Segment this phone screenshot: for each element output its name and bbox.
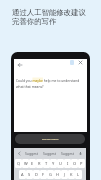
staticText: 通过人工智能修改建议 <box>12 8 86 17</box>
button[interactable]: Suggest <box>24 151 39 156</box>
button[interactable]: P <box>78 159 85 168</box>
button[interactable]: O <box>71 159 78 168</box>
button[interactable]: H <box>54 170 61 179</box>
staticText: Could you maybe help me to understand <box>16 78 80 82</box>
button[interactable]: T <box>43 159 50 168</box>
button[interactable]: Y <box>50 159 57 168</box>
button[interactable]: Voice input <box>78 151 83 156</box>
staticText: G <box>49 172 52 177</box>
staticText: P <box>80 161 83 166</box>
staticText: Q <box>17 161 21 166</box>
staticText: H <box>56 172 59 177</box>
button[interactable]: U <box>57 159 64 168</box>
staticText: Suggest <box>43 151 56 156</box>
staticText: T <box>45 161 48 166</box>
button[interactable]: G <box>47 170 54 179</box>
staticText: D <box>35 172 38 177</box>
button[interactable]: J <box>61 170 68 179</box>
button[interactable]: W <box>22 159 29 168</box>
button[interactable]: Suggest <box>60 151 75 156</box>
button[interactable]: Assistant <box>70 60 74 65</box>
staticText: U <box>59 161 62 166</box>
button[interactable]: Q <box>15 159 22 168</box>
staticText: Y <box>52 161 55 166</box>
staticText: Suggest <box>61 151 74 156</box>
button[interactable]: Improve writing <box>15 134 85 144</box>
button[interactable]: A <box>19 170 26 179</box>
button[interactable]: I <box>64 159 71 168</box>
button[interactable]: Close <box>77 59 83 65</box>
staticText: J <box>64 172 66 177</box>
button[interactable]: Back <box>16 61 23 68</box>
button[interactable]: D <box>33 170 40 179</box>
staticText: E <box>31 161 34 166</box>
button[interactable]: Previous suggestion <box>17 151 22 156</box>
button[interactable]: E <box>29 159 36 168</box>
staticText: I <box>67 161 69 166</box>
staticText: what that means? <box>16 84 44 88</box>
staticText: Suggest <box>25 151 38 156</box>
staticText: Improve writing <box>42 138 59 141</box>
button[interactable]: K <box>68 170 75 179</box>
staticText: S <box>28 172 31 177</box>
button[interactable]: S <box>26 170 33 179</box>
staticText: 完善你的写作 <box>12 17 57 26</box>
staticText: W <box>24 161 28 166</box>
staticText: A <box>21 172 24 177</box>
staticText: L <box>77 172 80 177</box>
button[interactable]: Suggest <box>42 151 57 156</box>
staticText: R <box>38 161 41 166</box>
button[interactable]: F <box>40 170 47 179</box>
staticText: F <box>42 172 45 177</box>
button[interactable]: R <box>36 159 43 168</box>
staticText: O <box>73 161 77 166</box>
button[interactable]: L <box>75 170 82 179</box>
staticText: K <box>70 172 73 177</box>
